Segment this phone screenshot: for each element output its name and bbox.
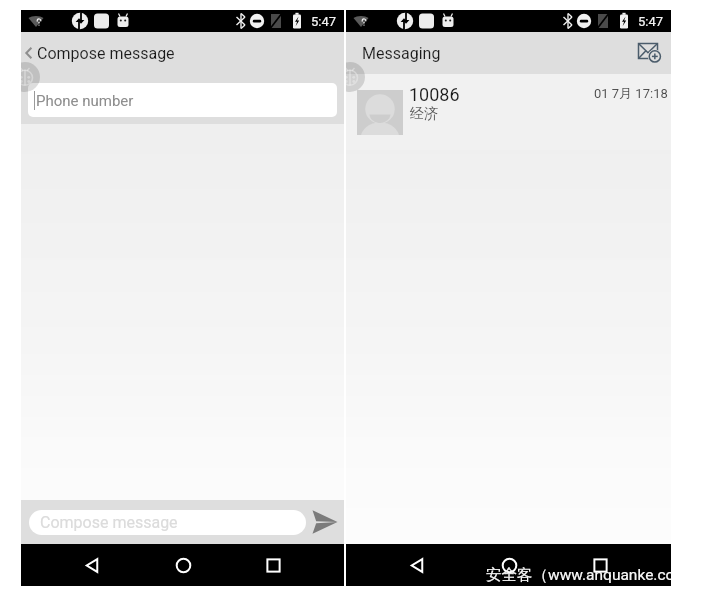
button[interactable]: Recents [253,545,293,585]
button[interactable]: Phone number [28,83,337,117]
button[interactable]: New message [630,32,670,74]
button[interactable]: Compose message [21,32,344,74]
staticText: Compose message [37,44,175,63]
button[interactable]: Home [163,545,203,585]
button[interactable]: Back [397,545,437,585]
staticText: Phone number [36,92,134,110]
button[interactable]: Back [72,545,112,585]
button[interactable]: Messaging [362,44,441,63]
staticText: 经济 [410,105,438,123]
staticText: Compose message [40,513,178,532]
staticText: 10086 [409,84,460,105]
button[interactable]: Home [489,545,529,585]
staticText: 安全客（www.anquanke.com [486,565,671,585]
staticText: 5:47 [638,14,664,29]
staticText: 5:47 [311,14,337,29]
button[interactable]: 10086 [346,74,671,150]
button[interactable]: Compose message [29,510,306,535]
button[interactable]: Recents [580,545,620,585]
button[interactable]: Send [312,508,338,536]
staticText: 01 7月 17:18 [594,85,668,101]
